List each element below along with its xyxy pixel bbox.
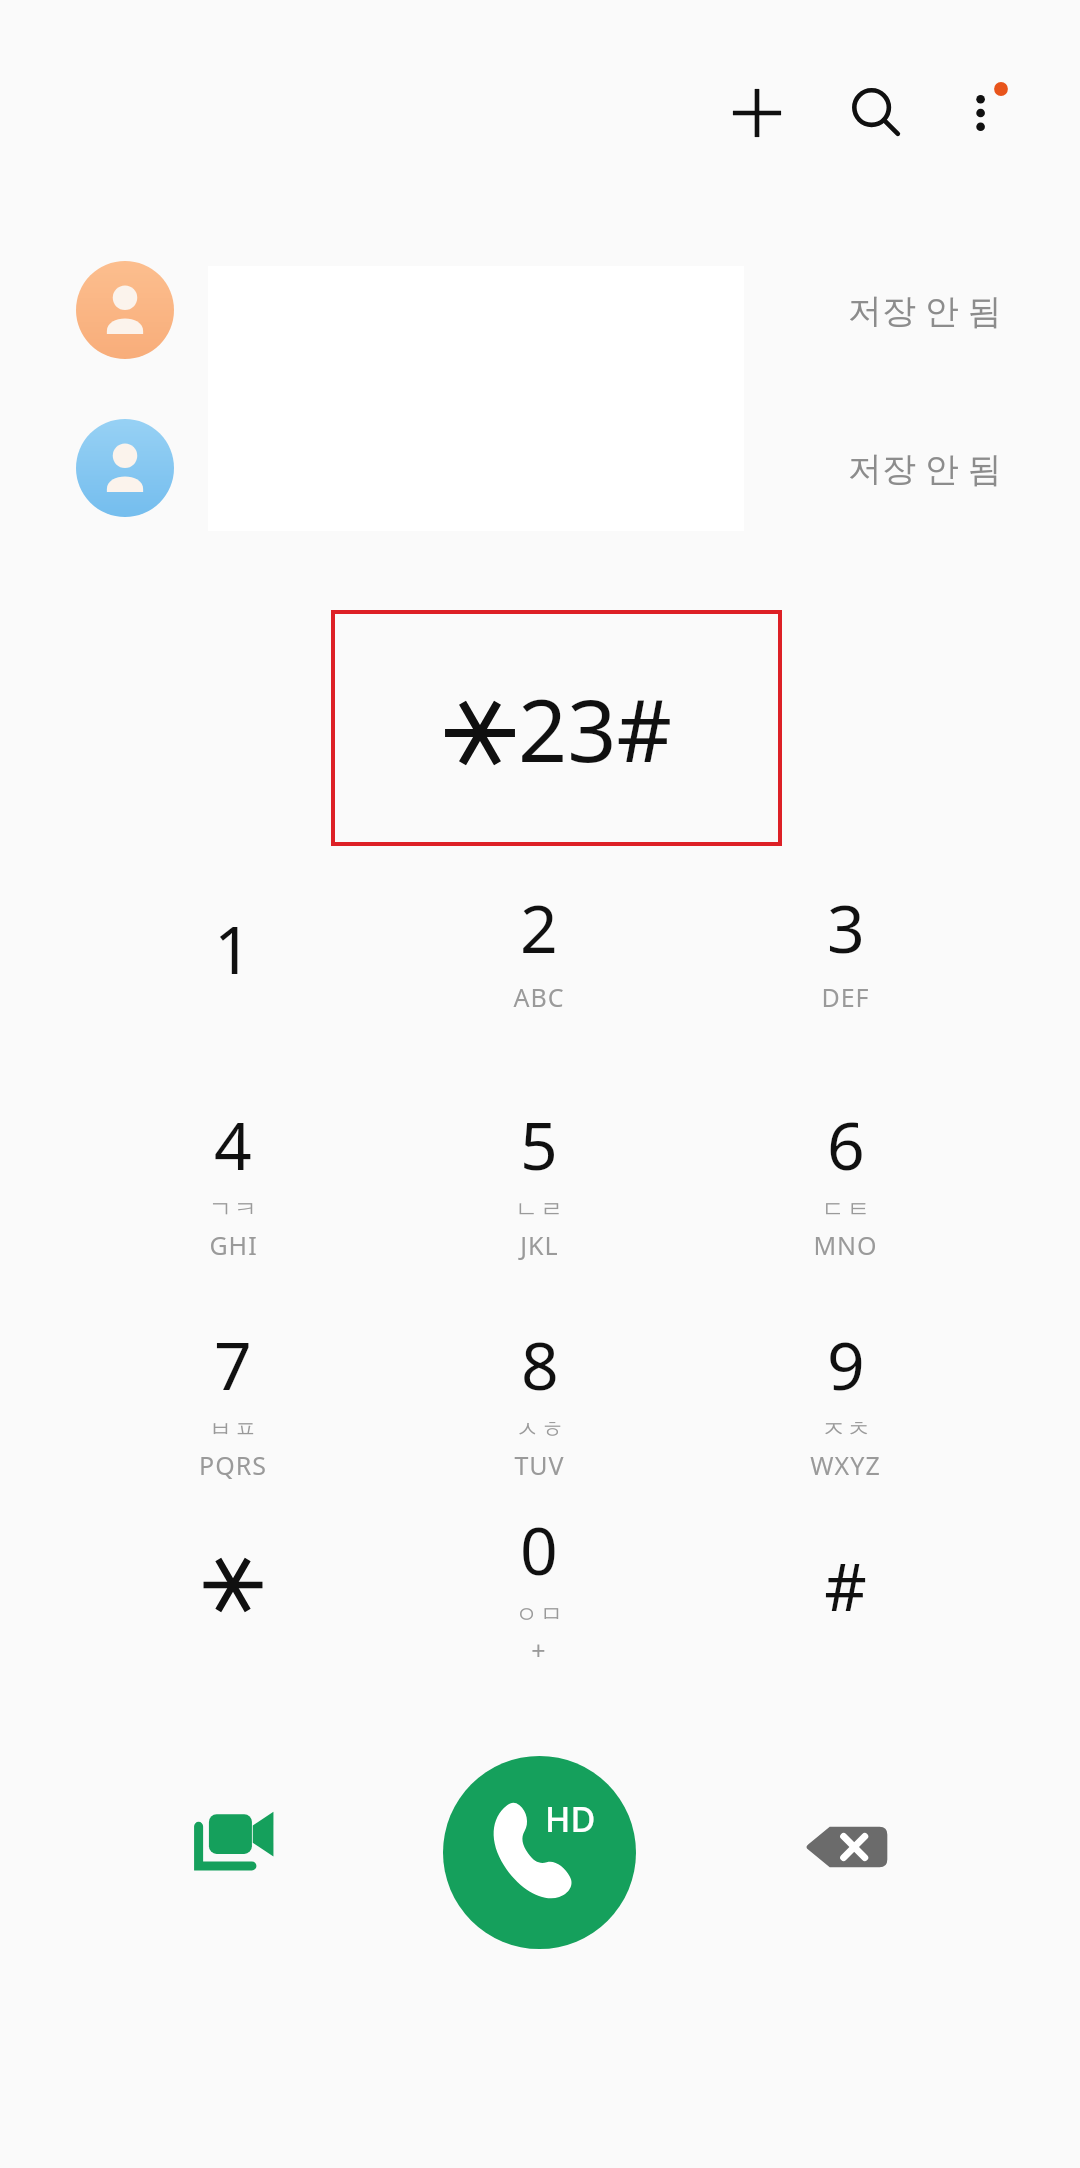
staticText: ㅂㅍ bbox=[208, 1415, 258, 1444]
staticText: 0 bbox=[520, 1504, 558, 1594]
button[interactable]: Search bbox=[824, 60, 930, 166]
staticText: 저장 안 됨 bbox=[848, 445, 1002, 491]
button[interactable]: 0 bbox=[389, 1485, 689, 1685]
staticText: 6 bbox=[827, 1099, 865, 1189]
button[interactable]: 5 bbox=[389, 1080, 689, 1280]
button[interactable]: 3 bbox=[695, 848, 995, 1048]
button[interactable]: 2 bbox=[389, 848, 689, 1048]
staticText: WXYZ bbox=[810, 1448, 881, 1482]
button[interactable]: More options bbox=[930, 60, 1036, 166]
staticText: ㄱㅋ bbox=[208, 1195, 258, 1224]
button[interactable]: 7 bbox=[83, 1300, 383, 1500]
staticText: JKL bbox=[520, 1228, 559, 1262]
staticText: ㄷㅌ bbox=[821, 1195, 871, 1224]
staticText: 23# bbox=[518, 670, 672, 787]
staticText: ㅇㅁ bbox=[514, 1600, 564, 1629]
staticText: # bbox=[824, 1540, 867, 1630]
button[interactable]: 저장 안 됨 bbox=[0, 398, 1080, 538]
button[interactable]: 6 bbox=[695, 1080, 995, 1280]
staticText: 9 bbox=[827, 1319, 865, 1409]
staticText: 8 bbox=[521, 1319, 559, 1409]
staticText: ㅈㅊ bbox=[821, 1415, 871, 1444]
button[interactable]: Video call bbox=[163, 1777, 303, 1917]
staticText: 7 bbox=[214, 1319, 252, 1409]
staticText: MNO bbox=[813, 1228, 878, 1262]
staticText: 1 bbox=[214, 903, 252, 993]
button[interactable]: 8 bbox=[389, 1300, 689, 1500]
staticText: ㄴㄹ bbox=[514, 1195, 564, 1224]
button[interactable]: Call bbox=[443, 1756, 636, 1949]
staticText: TUV bbox=[514, 1448, 565, 1482]
button[interactable]: 1 bbox=[83, 848, 383, 1048]
button[interactable]: Backspace bbox=[775, 1777, 915, 1917]
button[interactable]: # bbox=[695, 1485, 995, 1685]
button[interactable]: Add contact bbox=[704, 60, 810, 166]
staticText: ABC bbox=[513, 980, 565, 1014]
staticText: 2 bbox=[520, 882, 558, 972]
staticText: 5 bbox=[520, 1099, 558, 1189]
button[interactable]: 4 bbox=[83, 1080, 383, 1280]
staticText: 3 bbox=[827, 882, 865, 972]
staticText: + bbox=[531, 1633, 547, 1667]
staticText: DEF bbox=[821, 980, 870, 1014]
button[interactable]: 9 bbox=[695, 1300, 995, 1500]
staticText: 4 bbox=[214, 1099, 252, 1189]
button[interactable] bbox=[83, 1485, 383, 1685]
staticText: 저장 안 됨 bbox=[848, 287, 1002, 333]
staticText: GHI bbox=[209, 1228, 258, 1262]
staticText: ㅅㅎ bbox=[515, 1415, 565, 1444]
button[interactable]: 저장 안 됨 bbox=[0, 240, 1080, 380]
staticText: HD bbox=[545, 1796, 596, 1842]
staticText: PQRS bbox=[199, 1448, 267, 1482]
